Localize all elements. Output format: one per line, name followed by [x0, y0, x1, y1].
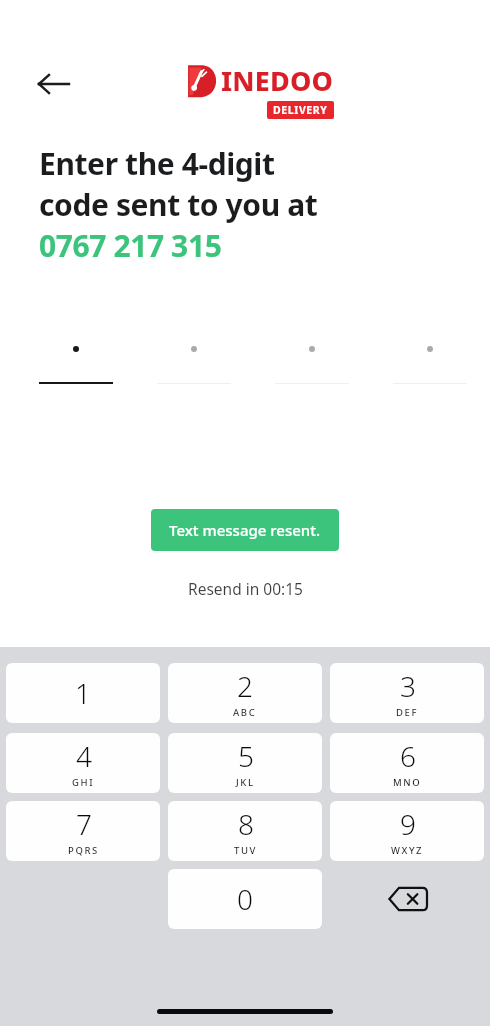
button[interactable]: Text message resent.	[151, 509, 339, 551]
button[interactable]: Backspace	[330, 869, 484, 929]
staticText: DELIVERY	[273, 103, 328, 117]
staticText: DEF	[396, 706, 419, 719]
staticText: Enter the 4-digit	[39, 143, 275, 184]
button[interactable]: 2	[168, 663, 322, 723]
button[interactable]: 6	[330, 733, 484, 793]
button[interactable]: 7	[6, 801, 160, 861]
staticText: PQRS	[68, 844, 99, 857]
staticText: 9	[400, 805, 416, 843]
staticText: 5	[238, 737, 254, 775]
staticText: INEDOO	[221, 62, 334, 99]
button[interactable]: Digit 4	[393, 330, 467, 384]
staticText: 8	[238, 805, 254, 843]
staticText: 0	[237, 880, 253, 918]
staticText: Text message resent.	[169, 520, 321, 540]
staticText: TUV	[234, 844, 257, 857]
button[interactable]: 5	[168, 733, 322, 793]
staticText: code sent to you at	[39, 184, 318, 225]
staticText: GHI	[72, 776, 95, 789]
button[interactable]: 8	[168, 801, 322, 861]
staticText: 6	[400, 737, 416, 775]
staticText: 2	[237, 667, 253, 705]
button[interactable]: Back	[30, 62, 78, 106]
staticText: 3	[400, 667, 416, 705]
staticText: WXYZ	[391, 844, 424, 857]
staticText: Resend in 00:15	[188, 578, 303, 599]
staticText: ABC	[233, 706, 257, 719]
staticText: 7	[76, 805, 92, 843]
button[interactable]: 9	[330, 801, 484, 861]
button[interactable]: 3	[330, 663, 484, 723]
button[interactable]: Digit 1	[39, 330, 113, 384]
button[interactable]: 4	[6, 733, 160, 793]
staticText: 4	[76, 737, 92, 775]
staticText: MNO	[393, 776, 422, 789]
staticText: JKL	[236, 776, 255, 789]
button[interactable]: Digit 2	[157, 330, 231, 384]
button[interactable]: 0	[168, 869, 322, 929]
button[interactable]: 1	[6, 663, 160, 723]
button[interactable]: Digit 3	[275, 330, 349, 384]
staticText: 1	[75, 674, 91, 712]
staticText: 0767 217 315	[39, 225, 222, 266]
